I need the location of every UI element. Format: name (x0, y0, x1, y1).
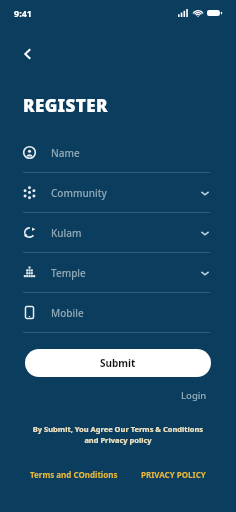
staticText: REGISTER (23, 94, 108, 117)
staticText: 9:41 (14, 7, 32, 19)
button[interactable]: Login (179, 387, 209, 404)
staticText: PRIVACY POLICY (141, 469, 206, 480)
button[interactable]: PRIVACY POLICY (139, 467, 208, 482)
staticText: Name (51, 146, 80, 160)
staticText: Login (181, 389, 207, 402)
staticText: Terms and COnditions (30, 469, 118, 480)
staticText: Mobile (51, 306, 84, 320)
staticText: Kulam (51, 226, 82, 240)
button[interactable]: Community (0, 173, 236, 212)
button[interactable]: Back (14, 40, 42, 68)
staticText: Submit (100, 356, 136, 370)
staticText: Temple (51, 266, 86, 280)
button[interactable]: Kulam (0, 213, 236, 252)
staticText: Community (51, 186, 107, 200)
button[interactable]: Name (0, 133, 236, 172)
staticText: By Submit, You Agree Our Terms & Conditi… (18, 424, 218, 445)
button[interactable]: Submit (25, 349, 211, 377)
button[interactable]: Terms and COnditions (28, 467, 120, 482)
button[interactable]: Temple (0, 253, 236, 292)
button[interactable]: Mobile (0, 293, 236, 332)
